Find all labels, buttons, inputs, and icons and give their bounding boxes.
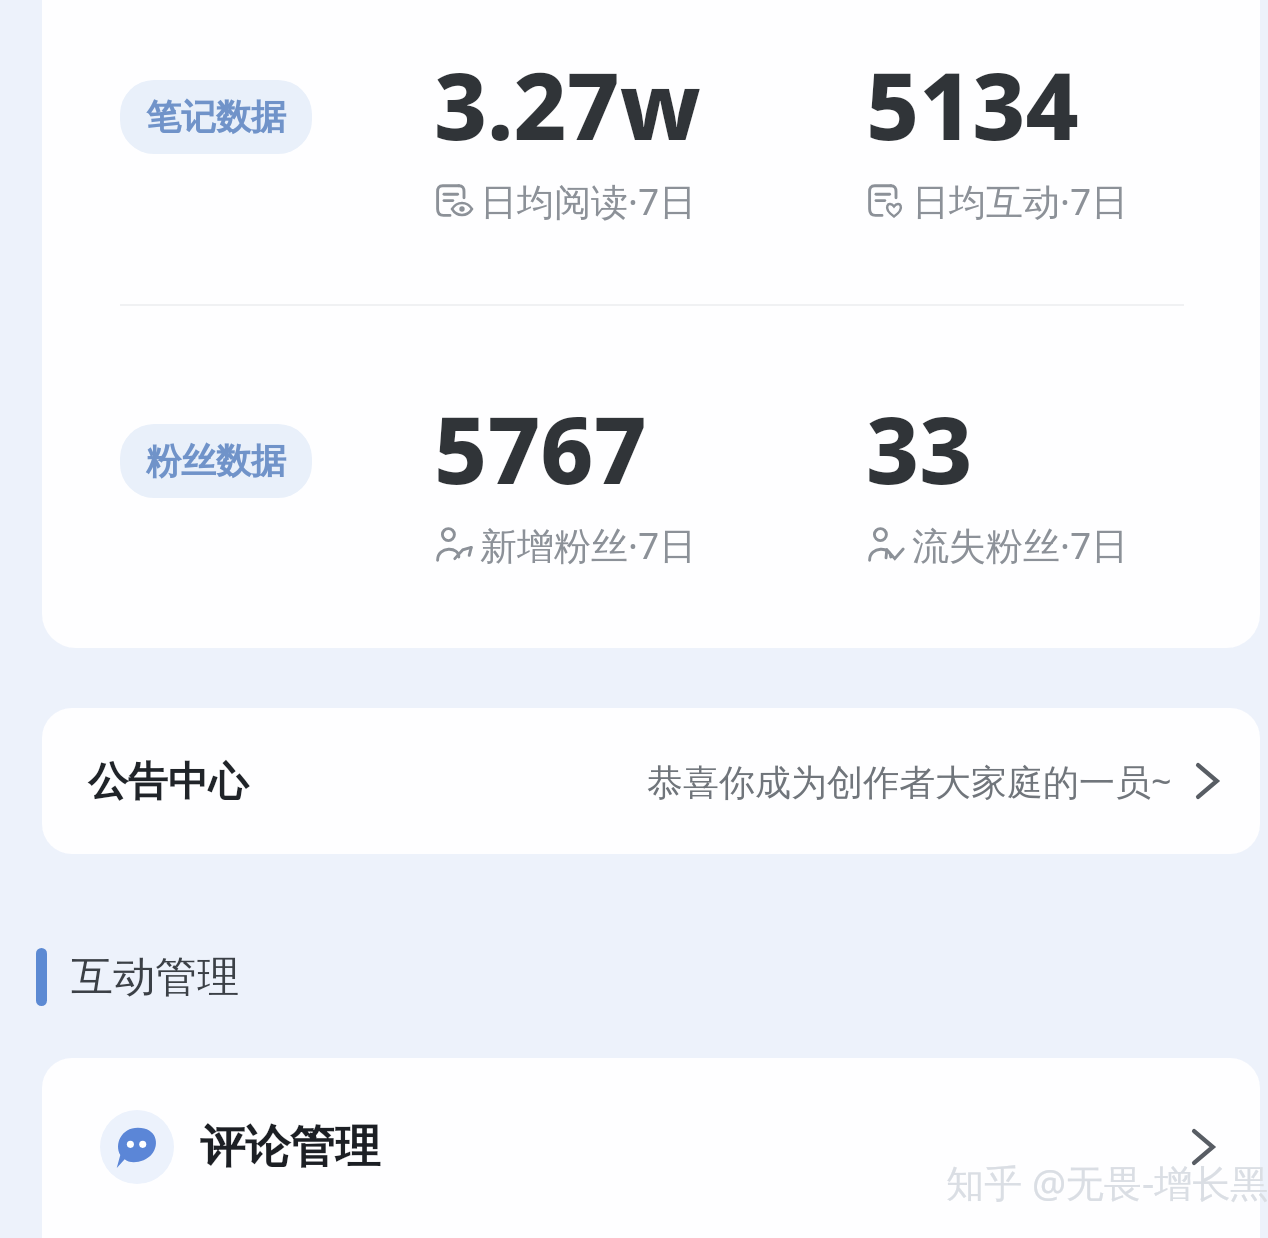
staticText: 粉丝数据 [146,439,286,483]
button[interactable]: 评论管理 [42,1058,1260,1236]
button[interactable]: 公告中心 [42,708,1260,854]
staticText: 33 [866,386,973,511]
staticText: 新增粉丝·7日 [480,519,697,570]
other: Open [1188,763,1224,799]
staticText: 互动管理 [71,951,239,1004]
staticText: 笔记数据 [146,95,286,139]
other: Open [1184,1129,1220,1165]
staticText: 公告中心 [88,756,248,806]
staticText: 评论管理 [200,1119,380,1176]
staticText: 知乎 @无畏-增长黑客 [946,1156,1268,1208]
staticText: 流失粉丝·7日 [912,519,1129,570]
staticText: 3.27w [434,42,701,167]
staticText: 5134 [866,42,1079,167]
staticText: 恭喜你成为创作者大家庭的一员~ [647,757,1172,806]
staticText: 日均阅读·7日 [480,175,697,226]
staticText: 日均互动·7日 [912,175,1129,226]
staticText: 5767 [434,386,647,511]
